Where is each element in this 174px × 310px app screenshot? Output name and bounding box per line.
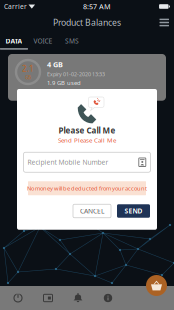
staticText: Product Balances <box>53 17 121 28</box>
staticText: Please Call Me <box>58 125 115 136</box>
button[interactable]: CANCEL <box>73 204 111 218</box>
staticText: 2.1 GB remaining <box>47 88 96 96</box>
button[interactable]: Balances <box>3 287 33 309</box>
button[interactable]: Recharge <box>33 287 63 309</box>
staticText: 1.9 GB used <box>47 79 81 87</box>
staticText: 8:57 AM <box>83 2 111 11</box>
staticText: CANCEL <box>80 206 104 216</box>
staticText: Send Please Call Me <box>58 136 116 144</box>
button[interactable]: SMS <box>58 32 86 49</box>
button[interactable]: VOICE <box>28 32 58 49</box>
staticText: Carrier <box>4 2 27 11</box>
staticText: GB <box>25 74 31 81</box>
staticText: VOICE <box>33 36 52 46</box>
button[interactable]: Shop <box>145 274 168 297</box>
staticText: SMS <box>65 36 79 46</box>
staticText: SEND <box>124 206 142 216</box>
staticText: DATA <box>5 36 22 46</box>
button[interactable]: Info <box>93 287 123 309</box>
button[interactable]: DATA <box>0 32 28 49</box>
staticText: Expiry 01-02-2020 13:33 <box>47 70 105 78</box>
staticText: 2.1 <box>22 63 34 74</box>
button[interactable]: Notifications <box>63 287 93 309</box>
staticText: Recipient Mobile Number <box>27 158 108 167</box>
staticText: 4 GB <box>47 59 63 69</box>
staticText: No money will be deducted from your acco… <box>27 184 147 192</box>
button[interactable]: SEND <box>117 204 150 218</box>
button[interactable]: Menu <box>154 13 174 31</box>
